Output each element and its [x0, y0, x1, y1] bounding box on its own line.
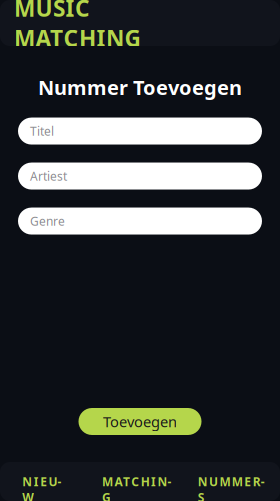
staticText: Titel: [30, 123, 54, 139]
button[interactable]: Titel: [18, 118, 262, 145]
button[interactable]: NIEUW: [0, 462, 93, 501]
staticText: MUSIC MATCHING: [14, 0, 140, 53]
button[interactable]: Artiest: [18, 163, 262, 190]
button[interactable]: MATCHING: [93, 462, 187, 501]
staticText: MATCHING: [102, 473, 178, 489]
staticText: NUMMERS: [198, 473, 269, 489]
button[interactable]: NUMMERS: [187, 462, 280, 501]
staticText: Toevoegen: [103, 412, 177, 431]
staticText: Artiest: [30, 168, 67, 184]
staticText: NIEUW: [22, 473, 71, 489]
button[interactable]: Genre: [18, 208, 262, 235]
staticText: Genre: [30, 213, 65, 229]
staticText: Nummer Toevoegen: [38, 74, 242, 101]
button[interactable]: Toevoegen: [78, 408, 201, 435]
